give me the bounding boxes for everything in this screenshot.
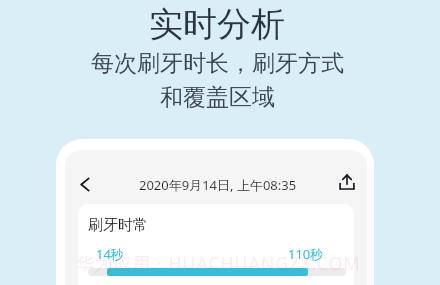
staticText: 刷牙时常	[88, 216, 148, 235]
button[interactable]: 刷牙时常	[78, 204, 354, 285]
staticText: 14秒	[96, 245, 124, 263]
staticText: 实时分析	[149, 3, 285, 46]
button[interactable]: Back	[70, 170, 99, 199]
staticText: 华为应用 · HUACHUANGZX.COM	[76, 251, 361, 276]
staticText: 每次刷牙时长，刷牙方式 和覆盖区域	[91, 49, 344, 111]
button[interactable]: Share	[332, 167, 362, 197]
staticText: 2020年9月14日, 上午08:35	[139, 176, 297, 194]
staticText: 110秒	[288, 245, 324, 263]
